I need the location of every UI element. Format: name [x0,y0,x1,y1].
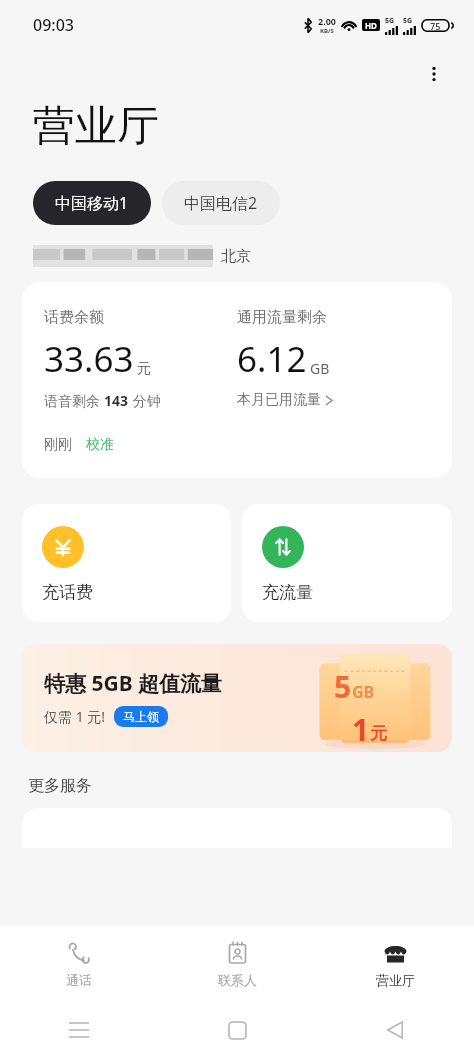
staticText: 北京 [221,247,251,266]
staticText: 营业厅 [33,100,159,153]
staticText: 仅需 1 元! [44,707,106,726]
button[interactable]: More options [416,56,452,92]
staticText: 元 [370,723,387,744]
staticText: 刚刚 [44,436,72,454]
button[interactable]: 营业厅 [316,926,474,1002]
staticText: 联系人 [218,972,257,988]
button[interactable]: 马上领 [114,706,168,727]
staticText: GB [310,359,330,378]
staticText: KB/S [320,27,334,35]
button[interactable]: 中国移动1 [33,181,151,225]
staticText: 中国电信2 [184,192,258,214]
button[interactable]: Back [316,1002,474,1058]
staticText: 通话 [66,972,92,988]
staticText: 语音剩余 [44,391,104,410]
staticText: 6.12 [237,335,307,383]
staticText: 1 [352,709,370,746]
staticText: 33.63 [44,335,134,383]
staticText: 分钟 [129,391,161,410]
staticText: 5G [403,16,413,26]
button[interactable]: 话费余额 [22,282,452,478]
staticText: 营业厅 [376,972,415,988]
staticText: 09:03 [33,14,74,36]
staticText: 更多服务 [28,776,92,796]
staticText: 2.00 [318,15,336,27]
staticText: 元 [137,360,151,378]
staticText: 143 [104,391,129,410]
staticText: 充流量 [262,582,313,603]
button[interactable]: 充话费 [22,504,231,622]
staticText: 特惠 5GB 超值流量 [44,669,223,698]
button[interactable]: 校准 [86,436,114,454]
staticText: 充话费 [42,582,93,603]
staticText: 5 [334,666,352,707]
button[interactable]: Recents [0,1002,158,1058]
staticText: HD [365,20,377,31]
button[interactable]: 本月已用流量 [237,391,332,409]
staticText: 校准 [86,436,114,454]
button[interactable]: 特惠 5GB 超值流量 [22,644,452,752]
button[interactable]: 充流量 [242,504,452,622]
button[interactable]: 中国电信2 [162,181,280,225]
staticText: 中国移动1 [55,192,129,214]
button[interactable]: Home [158,1002,316,1058]
button[interactable]: 联系人 [158,926,316,1002]
staticText: 通用流量剩余 [237,308,327,327]
staticText: 5G [385,16,395,26]
staticText: GB [352,681,375,703]
staticText: 话费余额 [44,308,104,327]
staticText: 本月已用流量 [237,391,321,409]
staticText: 75 [430,20,441,32]
button[interactable]: 通话 [0,926,158,1002]
staticText: 马上领 [123,709,159,724]
